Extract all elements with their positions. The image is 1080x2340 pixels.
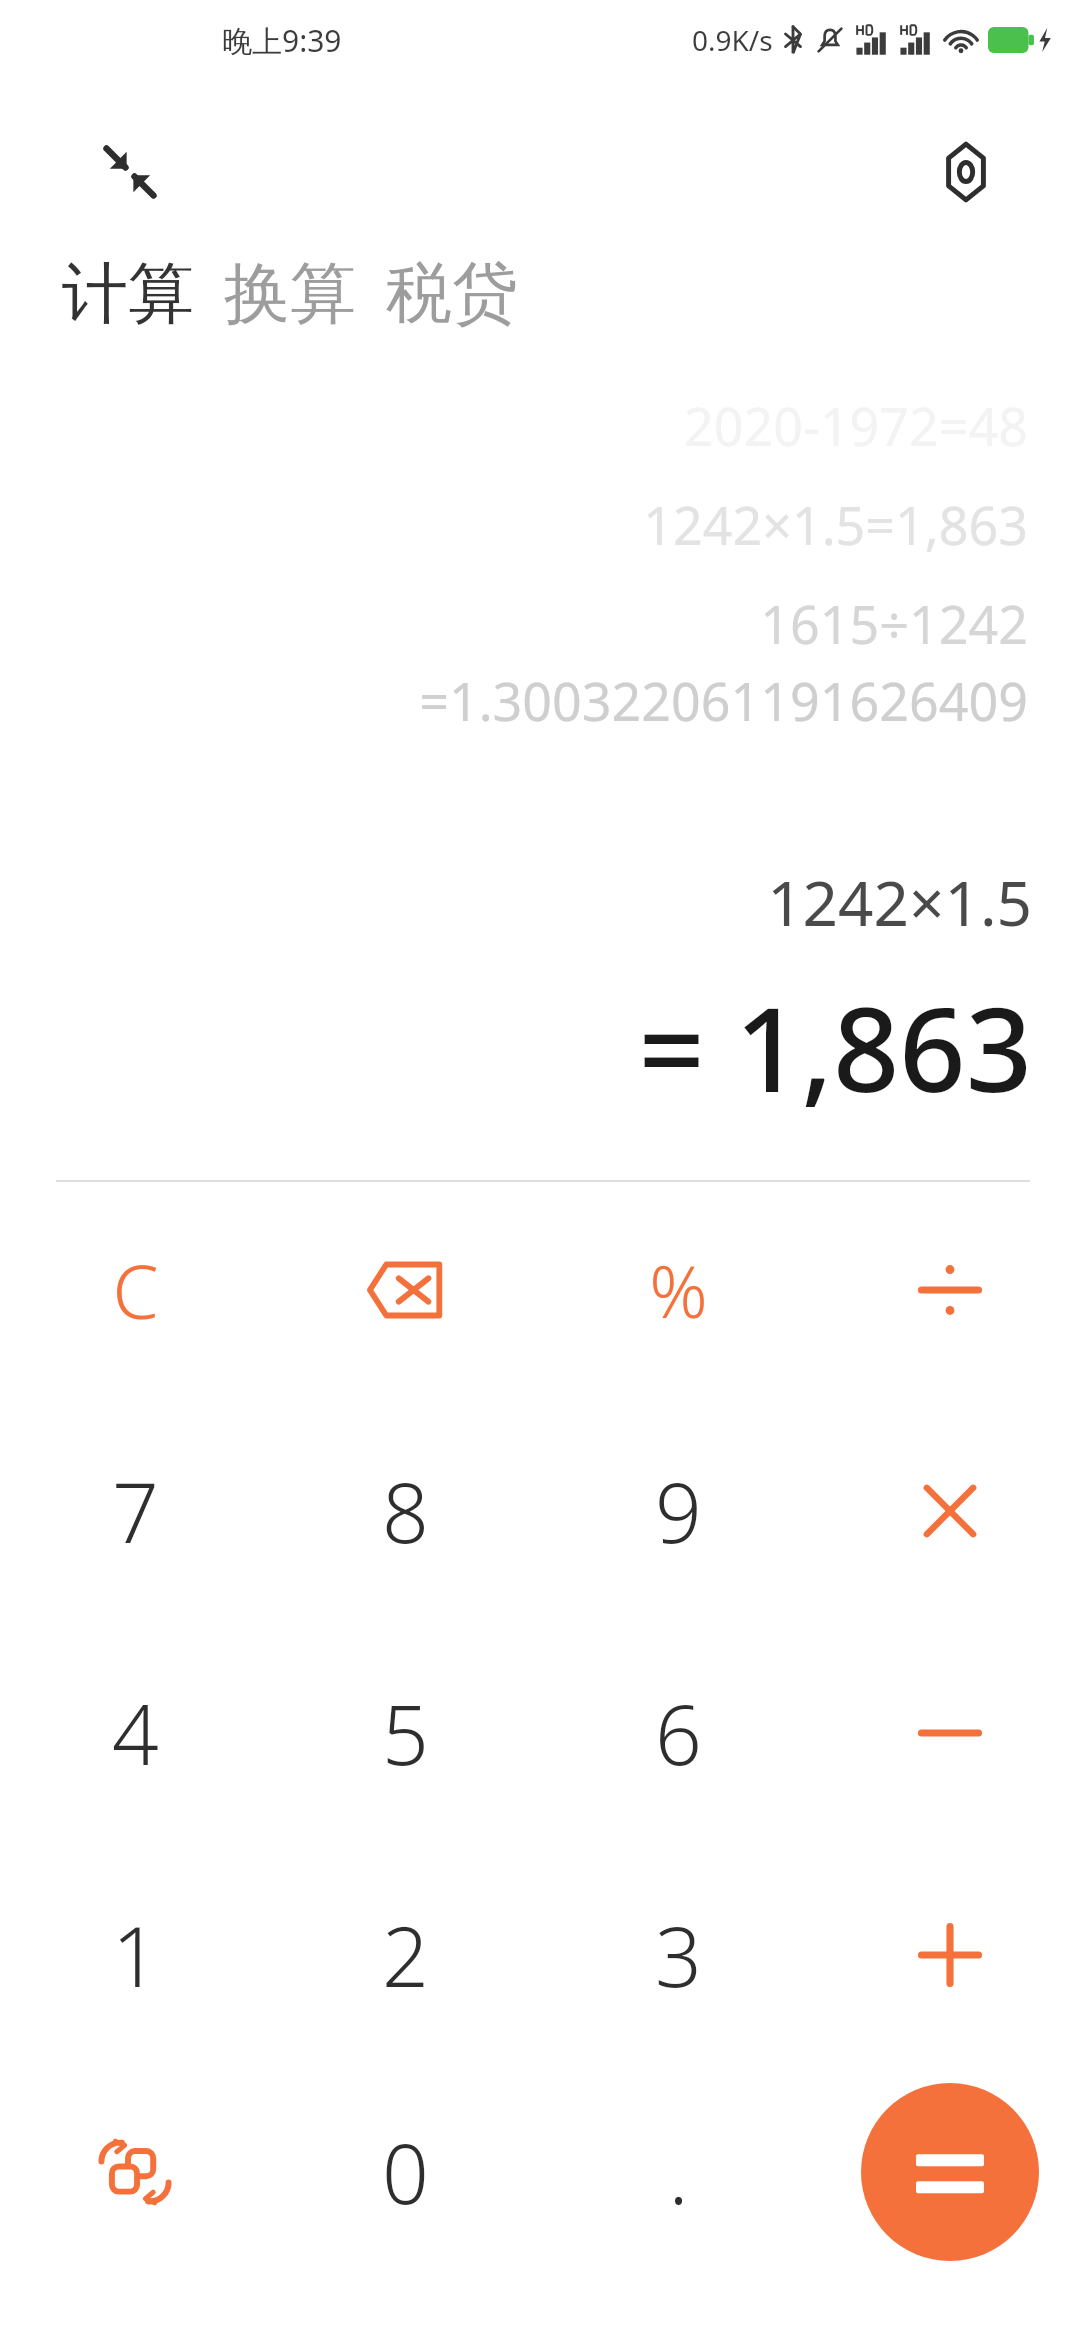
staticText: 6 [655,1677,702,1789]
button[interactable]: 4 [30,1633,240,1833]
button[interactable]: Multiply [845,1411,1055,1611]
staticText: . [668,2116,689,2228]
staticText: % [649,1241,708,1339]
button[interactable]: 1 [30,1855,240,2055]
button[interactable]: 5 [300,1633,510,1833]
staticText: 4 [112,1677,159,1789]
staticText: C [112,1240,159,1341]
button[interactable]: 7 [30,1411,240,1611]
button[interactable]: 换算 [224,252,360,335]
staticText: 1 [112,1899,159,2011]
button[interactable]: Collapse [78,120,182,224]
staticText: 计算 [62,252,194,335]
staticText: =1.300322061191626409 [419,665,1028,736]
button[interactable]: 2 [300,1855,510,2055]
button[interactable]: Equals [861,2083,1039,2261]
button[interactable]: Convert units [30,2072,240,2272]
staticText: 8 [382,1455,429,1567]
button[interactable]: . [573,2072,783,2272]
staticText: 2020-1972=48 [684,390,1028,461]
staticText: 9 [655,1455,702,1567]
staticText: 税贷 [386,252,518,335]
staticText: 1242×1.5 [767,860,1032,944]
button[interactable]: Percent [573,1190,783,1390]
staticText: 0.9K/s [692,21,773,59]
button[interactable]: 税贷 [386,252,522,335]
staticText: 晚上9:39 [222,20,342,61]
button[interactable]: Clear [30,1190,240,1390]
staticText: 2 [382,1899,429,2011]
staticText: 7 [112,1455,159,1567]
staticText: = 1,863 [638,968,1032,1126]
button[interactable]: Backspace [300,1190,510,1390]
staticText: 3 [655,1899,702,2011]
staticText: 5 [382,1677,429,1789]
button[interactable]: 9 [573,1411,783,1611]
button[interactable]: Settings [914,120,1018,224]
button[interactable]: 8 [300,1411,510,1611]
button[interactable]: Divide [845,1190,1055,1390]
button[interactable]: Plus [845,1855,1055,2055]
staticText: 0 [382,2116,429,2228]
button[interactable]: 0 [300,2072,510,2272]
button[interactable]: 计算 [62,252,198,335]
button[interactable]: 6 [573,1633,783,1833]
button[interactable]: 3 [573,1855,783,2055]
staticText: 1615÷1242 [760,588,1028,659]
button[interactable]: Minus [845,1633,1055,1833]
staticText: 换算 [224,252,356,335]
staticText: 1242×1.5=1,863 [643,489,1028,560]
